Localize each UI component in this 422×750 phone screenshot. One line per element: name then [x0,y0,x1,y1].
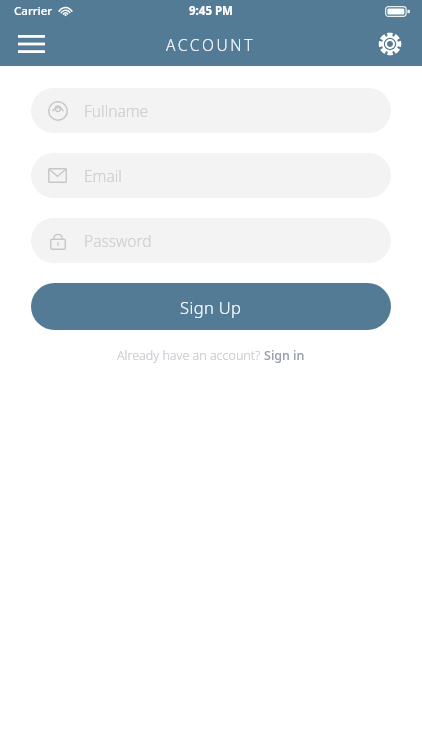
staticText: Sign Up [180,296,242,318]
button[interactable]: Sign Up [31,283,391,330]
staticText: Password [84,230,152,251]
staticText: Carrier [14,3,53,19]
button[interactable]: Email [31,153,391,198]
staticText: 9:45 PM [189,3,233,19]
button[interactable]: Settings [367,22,413,66]
staticText: ACCOUNT [166,34,256,55]
button[interactable]: Fullname [31,88,391,133]
button[interactable]: Password [31,218,391,263]
staticText: Fullname [84,100,149,121]
button[interactable]: Sign in [264,347,305,364]
staticText: Already have an account? [117,347,264,364]
staticText: Sign in [264,347,305,364]
staticText: Email [84,165,122,186]
button[interactable]: Open navigation menu [8,22,54,66]
